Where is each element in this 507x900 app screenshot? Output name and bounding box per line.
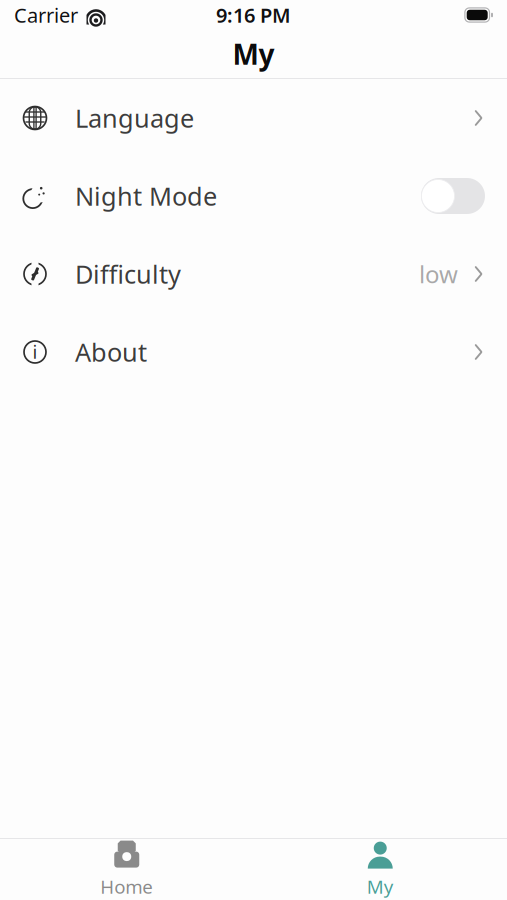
staticText: i <box>32 339 37 364</box>
button[interactable]: Difficulty <box>0 235 507 313</box>
staticText: My <box>367 874 394 899</box>
button[interactable]: Language <box>0 79 507 157</box>
staticText: Night Mode <box>75 179 217 213</box>
button[interactable]: My <box>253 839 507 900</box>
staticText: low <box>419 258 458 290</box>
staticText: 9:16 PM <box>216 2 291 28</box>
staticText: About <box>75 335 147 369</box>
staticText: Home <box>100 874 153 899</box>
staticText: Language <box>75 101 194 135</box>
staticText: My <box>232 35 274 73</box>
button[interactable]: Home <box>0 839 253 900</box>
button[interactable]: i <box>0 313 507 391</box>
button[interactable]: Night Mode <box>0 157 507 235</box>
staticText: Difficulty <box>75 257 181 291</box>
staticText: Carrier <box>14 2 78 28</box>
